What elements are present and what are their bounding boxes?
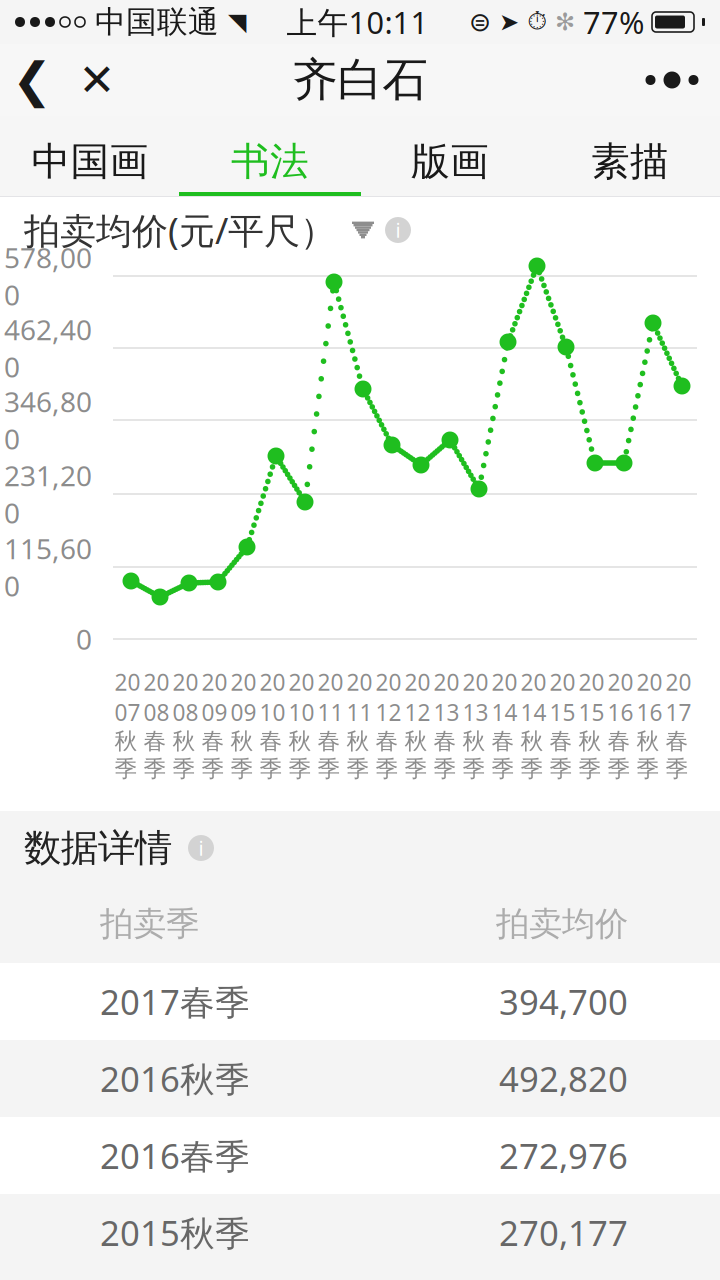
- button[interactable]: Metric information: [380, 210, 416, 250]
- staticText: 书法: [231, 138, 309, 185]
- staticText: 578,000: [4, 239, 92, 313]
- staticText: 齐白石: [292, 52, 427, 108]
- staticText: 2016 春季: [607, 667, 633, 783]
- button[interactable]: Close: [64, 44, 130, 116]
- staticText: 394,700: [499, 978, 628, 1024]
- staticText: 2012 春季: [375, 667, 401, 783]
- staticText: 2017春季: [100, 978, 250, 1024]
- staticText: 2009 秋季: [230, 667, 256, 783]
- staticText: 2015 秋季: [578, 667, 604, 783]
- staticText: 2008 秋季: [172, 667, 198, 783]
- staticText: i: [395, 217, 400, 243]
- staticText: ➤: [499, 8, 519, 36]
- staticText: 拍卖季: [100, 903, 199, 944]
- staticText: 2011 秋季: [346, 667, 372, 783]
- button[interactable]: 2016春季: [0, 1117, 720, 1194]
- staticText: i: [198, 835, 203, 861]
- staticText: 115,600: [4, 530, 92, 604]
- staticText: 272,976: [499, 1132, 628, 1178]
- button[interactable]: 2017春季: [0, 963, 720, 1040]
- button[interactable]: 2016秋季: [0, 1040, 720, 1117]
- staticText: 2007 秋季: [114, 667, 140, 783]
- staticText: ✻: [555, 8, 575, 36]
- staticText: 2010 秋季: [288, 667, 314, 783]
- staticText: 素描: [591, 138, 669, 185]
- staticText: 版画: [411, 138, 489, 185]
- staticText: 2016秋季: [100, 1055, 250, 1101]
- staticText: 上午10:11: [286, 2, 428, 42]
- staticText: ✕: [78, 55, 115, 105]
- staticText: 2010 春季: [259, 667, 285, 783]
- staticText: 492,820: [499, 1055, 628, 1101]
- staticText: ◥: [228, 8, 246, 36]
- button[interactable]: 版画: [360, 116, 540, 196]
- staticText: 462,400: [4, 311, 92, 385]
- button[interactable]: Choose metric: [346, 210, 380, 250]
- button[interactable]: Back: [0, 44, 64, 116]
- staticText: ⏱: [527, 10, 547, 34]
- staticText: 2011 春季: [317, 667, 343, 783]
- staticText: ⊜: [469, 7, 491, 37]
- staticText: 2012 秋季: [404, 667, 430, 783]
- button[interactable]: 2015秋季: [0, 1194, 720, 1271]
- staticText: 2009 春季: [201, 667, 227, 783]
- button[interactable]: 中国画: [0, 116, 180, 196]
- button[interactable]: More options: [624, 44, 720, 116]
- staticText: 2014 秋季: [520, 667, 546, 783]
- staticText: 拍卖均价(元/平尺）: [24, 206, 336, 254]
- button[interactable]: 素描: [540, 116, 720, 196]
- staticText: 中国画: [31, 138, 148, 185]
- staticText: 2016春季: [100, 1132, 250, 1178]
- staticText: 2013 秋季: [462, 667, 488, 783]
- staticText: 2016 秋季: [636, 667, 662, 783]
- staticText: 2015 春季: [549, 667, 575, 783]
- staticText: 270,177: [499, 1209, 628, 1255]
- staticText: 中国联通: [95, 3, 219, 41]
- button[interactable]: Data information: [184, 831, 218, 865]
- staticText: 拍卖均价: [496, 903, 628, 944]
- button[interactable]: 书法: [180, 116, 360, 196]
- staticText: 2008 春季: [143, 667, 169, 783]
- staticText: 77%: [583, 2, 644, 42]
- staticText: 2013 春季: [433, 667, 459, 783]
- staticText: 2014 春季: [491, 667, 517, 783]
- staticText: 0: [76, 620, 92, 658]
- staticText: 231,200: [4, 457, 92, 531]
- staticText: 数据详情: [24, 825, 172, 871]
- staticText: ❮: [12, 53, 52, 107]
- staticText: 346,800: [4, 383, 92, 457]
- staticText: 2015秋季: [100, 1209, 250, 1255]
- staticText: 2017 春季: [665, 667, 691, 783]
